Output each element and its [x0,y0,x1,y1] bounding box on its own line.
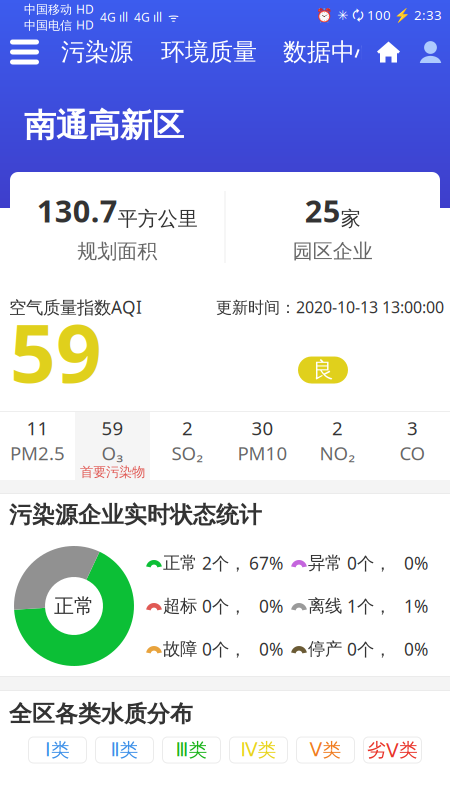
staticText: 2 [332,416,343,440]
staticText: 污染源 [61,37,133,67]
button[interactable]: Home [377,40,400,63]
staticText: 离线 [308,595,342,617]
staticText: 0% [404,637,428,660]
staticText: 数据中心 [283,37,379,67]
staticText: 2 [182,416,193,440]
staticText: 南通高新区 [24,106,184,145]
staticText: 0% [259,594,283,617]
staticText: 25 [305,190,341,231]
staticText: 环境质量 [161,37,257,67]
staticText: ⏰ ✳ 🗘 100 ⚡ 2:33 [316,6,442,28]
staticText: Ⅱ类 [110,738,138,761]
staticText: 正常 [54,594,94,618]
staticText: PM2.5 [10,441,65,465]
staticText: 劣Ⅴ类 [367,738,418,761]
staticText: NO₂ [319,441,355,465]
staticText: 中国移动 HD [24,1,94,17]
button[interactable]: Ⅳ类 [229,737,287,763]
staticText: 59 [10,298,102,405]
staticText: 中国电信 HD [24,17,94,33]
staticText: 全区各类水质分布 [9,700,193,728]
staticText: 首要污染物 [80,464,145,480]
staticText: 1个， [347,594,391,617]
button[interactable]: Ⅴ类 [296,737,354,763]
staticText: 130.7 [37,190,118,231]
staticText: 0% [259,637,283,660]
staticText: 59 [101,416,123,440]
staticText: Ⅳ类 [240,738,276,761]
staticText: 30 [251,416,273,440]
staticText: CO [399,441,425,465]
staticText: SO₂ [171,441,203,465]
staticText: 平方公里 [118,206,198,231]
button[interactable]: 劣Ⅴ类 [363,737,421,763]
staticText: Ⅰ类 [45,738,70,761]
staticText: Ⅴ类 [309,738,341,761]
button[interactable]: Ⅲ类 [162,737,220,763]
staticText: 0个， [347,637,391,660]
staticText: 67% [249,551,283,574]
button[interactable]: Ⅱ类 [95,737,153,763]
staticText: 园区企业 [293,239,373,264]
button[interactable]: 良 [298,356,348,383]
staticText: 更新时间：2020-10-13 13:00:00 [216,296,444,318]
staticText: 2个， [202,551,246,574]
button[interactable]: Menu [10,35,39,69]
staticText: 异常 [308,552,342,574]
staticText: 4G ıll 4G ıll ᯤ [94,9,179,25]
staticText: O₃ [101,441,123,465]
staticText: 故障 [163,638,197,660]
staticText: 停产 [308,638,342,660]
staticText: 空气质量指数AQI [9,295,142,318]
staticText: 0% [404,551,428,574]
staticText: 0个， [202,637,246,660]
staticText: 正常 [163,552,197,574]
staticText: 0个， [202,594,246,617]
staticText: Ⅲ类 [175,738,207,761]
staticText: 11 [26,416,48,440]
staticText: 0个， [347,551,391,574]
button[interactable]: 数据中心 [283,37,379,67]
staticText: 超标 [163,595,197,617]
button[interactable]: 污染源 [61,37,133,67]
staticText: 1% [404,594,428,617]
staticText: PM10 [237,441,287,465]
staticText: 规划面积 [77,239,157,264]
staticText: 家 [341,206,361,231]
button[interactable]: 环境质量 [161,37,257,67]
staticText: 3 [407,416,418,440]
button[interactable]: Profile [419,40,442,63]
staticText: 污染源企业实时状态统计 [9,501,262,529]
staticText: 良 [312,357,333,383]
button[interactable]: Ⅰ类 [28,737,86,763]
